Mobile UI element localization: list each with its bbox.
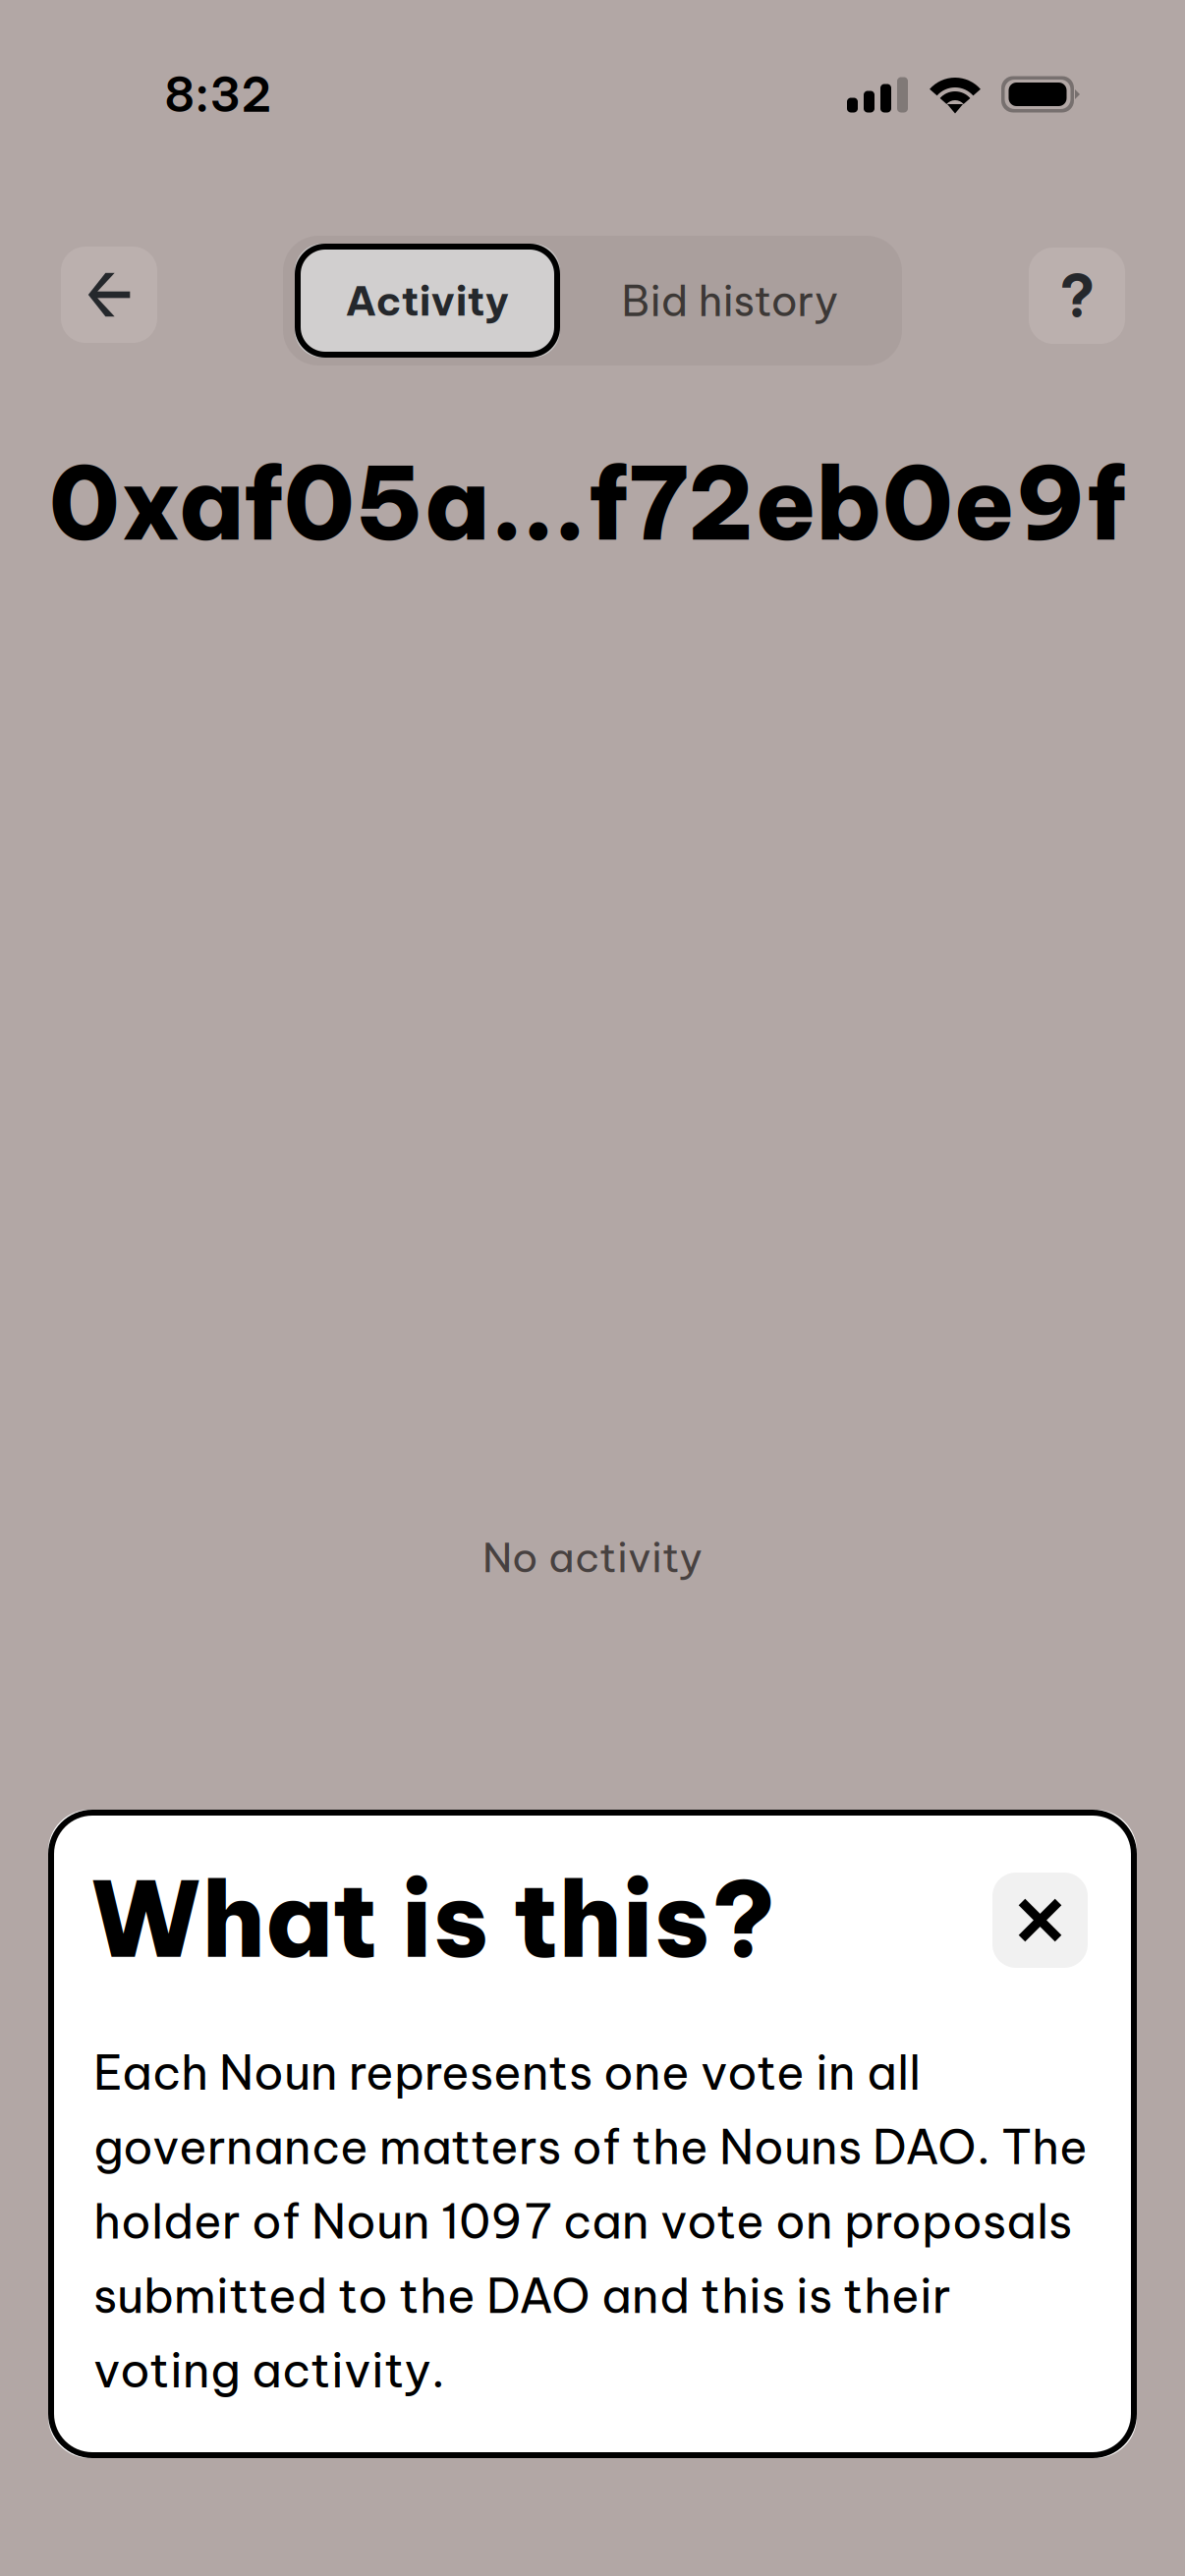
- staticText: Each Noun represents one vote in all gov…: [93, 2043, 1088, 2400]
- staticText: No activity: [482, 1532, 703, 1583]
- button[interactable]: Close: [992, 1873, 1088, 1968]
- staticText: Activity: [345, 275, 509, 326]
- staticText: ?: [1059, 259, 1095, 332]
- staticText: 0xaf05a...f72eb0e9f: [49, 440, 1127, 566]
- button[interactable]: Activity: [295, 244, 560, 358]
- staticText: 8:32: [164, 64, 272, 124]
- button[interactable]: Back: [61, 247, 157, 343]
- staticText: What is this?: [90, 1853, 776, 1984]
- staticText: Bid history: [621, 274, 839, 327]
- button[interactable]: What is this?: [1029, 248, 1125, 344]
- button[interactable]: Bid history: [560, 244, 900, 358]
